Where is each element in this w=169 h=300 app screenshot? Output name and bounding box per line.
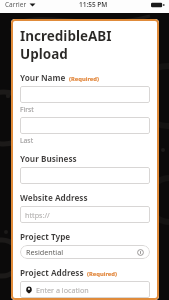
button[interactable] bbox=[20, 117, 150, 134]
staticText: Your Business bbox=[20, 153, 77, 164]
staticText: Last bbox=[20, 136, 34, 145]
staticText: First bbox=[20, 105, 34, 114]
staticText: https:// bbox=[25, 210, 50, 220]
button[interactable]: https:// bbox=[20, 206, 150, 223]
staticText: Your Name bbox=[20, 72, 66, 83]
button[interactable] bbox=[20, 86, 150, 103]
staticText: Project Address bbox=[20, 267, 84, 278]
staticText: Residential bbox=[26, 247, 64, 257]
staticText: (Required) bbox=[87, 270, 117, 278]
staticText: 11:55 PM bbox=[79, 0, 108, 9]
other: Location bbox=[25, 286, 33, 294]
staticText: (Required) bbox=[69, 75, 99, 83]
button[interactable]: Location bbox=[20, 281, 150, 298]
other: Open project type list bbox=[137, 249, 144, 256]
button[interactable] bbox=[20, 167, 150, 184]
staticText: Enter a location bbox=[36, 285, 89, 295]
staticText: Project Type bbox=[20, 231, 71, 242]
staticText: IncredibleABI Upload bbox=[20, 27, 150, 63]
staticText: Website Address bbox=[20, 192, 88, 203]
staticText: Carrier bbox=[5, 0, 27, 9]
button[interactable]: Residential bbox=[20, 245, 150, 259]
